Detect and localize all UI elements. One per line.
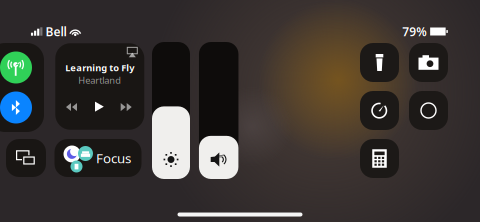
button[interactable]: Screen Mirroring <box>6 139 46 177</box>
button[interactable]: Bluetooth <box>0 91 32 123</box>
button[interactable]: Play <box>95 102 104 112</box>
staticText: Learning to Fly <box>65 62 134 74</box>
button[interactable]: Timer <box>360 91 399 130</box>
button[interactable]: Next <box>121 103 132 111</box>
button[interactable]: AirPlay <box>127 47 138 57</box>
button[interactable]: Previous <box>66 103 77 111</box>
staticText: Focus <box>96 149 131 167</box>
button[interactable]: Calculator <box>360 139 399 178</box>
staticText: 79% <box>402 23 427 39</box>
staticText: Heartland <box>78 74 121 86</box>
button[interactable]: Cellular Data <box>0 51 32 83</box>
button[interactable]: Screen Recording <box>409 91 448 130</box>
button[interactable]: Focus <box>54 139 141 177</box>
staticText: Bell <box>45 23 66 39</box>
button[interactable]: Camera <box>409 43 448 82</box>
button[interactable]: Flashlight <box>360 43 399 82</box>
